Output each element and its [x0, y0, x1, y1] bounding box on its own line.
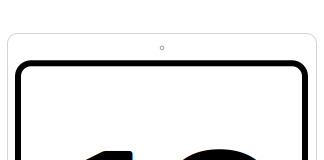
- staticText: 10: [63, 77, 289, 160]
